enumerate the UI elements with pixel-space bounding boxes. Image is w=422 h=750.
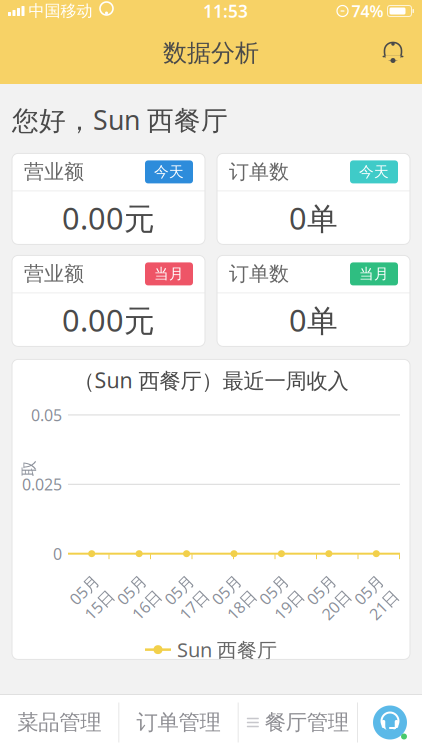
- staticText: 05月16日: [122, 576, 156, 619]
- staticText: 取: [21, 458, 37, 478]
- staticText: 数据分析: [163, 38, 259, 68]
- button[interactable]: 订单管理: [119, 695, 238, 750]
- staticText: Sun 西餐厅: [177, 636, 277, 663]
- staticText: 当月: [359, 265, 389, 283]
- button[interactable]: 订单数: [217, 255, 410, 346]
- staticText: 74%: [351, 0, 383, 22]
- button[interactable]: 营业额: [12, 255, 205, 346]
- staticText: 中国移动: [28, 1, 92, 21]
- staticText: 05月15日: [75, 576, 109, 619]
- staticText: 0.00元: [62, 198, 155, 238]
- button[interactable]: Sun 西餐厅: [145, 632, 277, 667]
- staticText: 0单: [289, 300, 338, 340]
- button[interactable]: 通知: [376, 36, 410, 70]
- staticText: 0.00元: [62, 300, 155, 340]
- staticText: 0.05: [31, 404, 62, 425]
- button[interactable]: 餐厅管理: [239, 695, 357, 750]
- staticText: 05月17日: [170, 576, 204, 619]
- staticText: 0单: [289, 198, 338, 238]
- staticText: 您好，Sun 西餐厅: [12, 102, 228, 137]
- staticText: （Sun 西餐厅）最近一周收入: [73, 366, 348, 394]
- button[interactable]: 菜品管理: [0, 695, 118, 750]
- staticText: 0.025: [22, 474, 62, 495]
- staticText: 05月21日: [359, 576, 393, 619]
- button[interactable]: 订单数: [217, 153, 410, 244]
- staticText: 0: [53, 543, 62, 564]
- staticText: 餐厅管理: [265, 709, 349, 736]
- staticText: 订单管理: [136, 709, 220, 736]
- staticText: 11:53: [203, 0, 248, 22]
- staticText: 营业额: [24, 160, 84, 184]
- staticText: 05月18日: [217, 576, 251, 619]
- staticText: 今天: [359, 163, 389, 181]
- staticText: 菜品管理: [17, 709, 101, 736]
- staticText: 05月19日: [264, 576, 298, 619]
- button[interactable]: 客服: [358, 695, 422, 750]
- staticText: 当月: [154, 265, 184, 283]
- staticText: 05月20日: [312, 576, 346, 619]
- staticText: 订单数: [229, 262, 289, 286]
- staticText: 今天: [154, 163, 184, 181]
- staticText: 营业额: [24, 262, 84, 286]
- button[interactable]: 营业额: [12, 153, 205, 244]
- staticText: 订单数: [229, 160, 289, 184]
